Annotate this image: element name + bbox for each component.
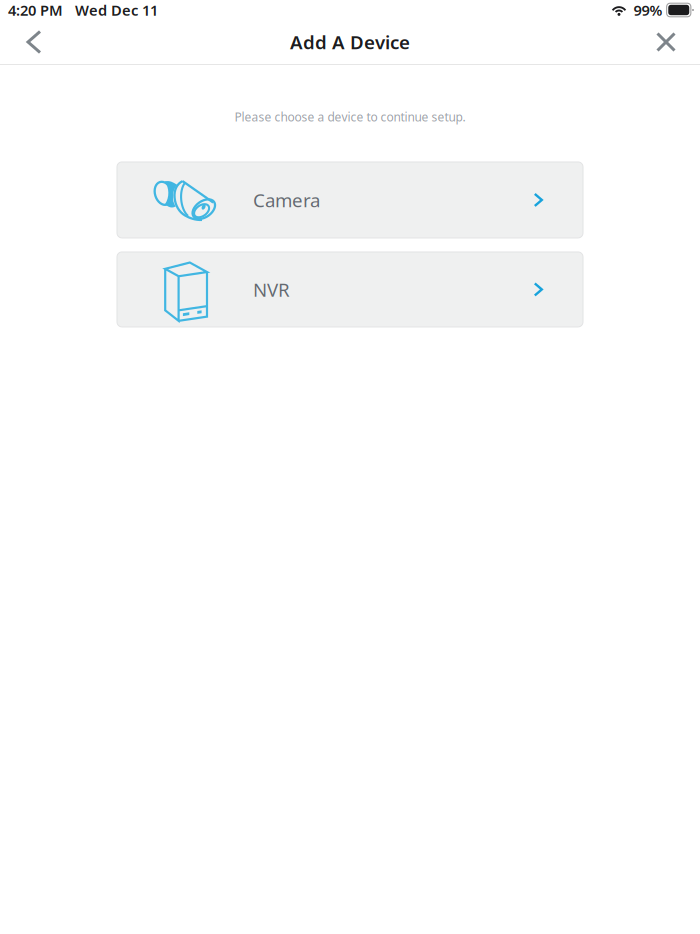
staticText: Please choose a device to continue setup… xyxy=(234,109,465,125)
staticText: Add A Device xyxy=(290,30,410,54)
button[interactable]: Back xyxy=(12,20,56,64)
staticText: NVR xyxy=(253,277,290,302)
staticText: 4:20 PM xyxy=(8,0,63,20)
button[interactable]: NVR xyxy=(117,252,583,327)
staticText: Wed Dec 11 xyxy=(75,0,158,20)
staticText: Camera xyxy=(253,187,320,212)
button[interactable]: Camera xyxy=(117,162,583,238)
staticText: 99% xyxy=(633,0,662,20)
button[interactable]: Close xyxy=(644,20,688,64)
